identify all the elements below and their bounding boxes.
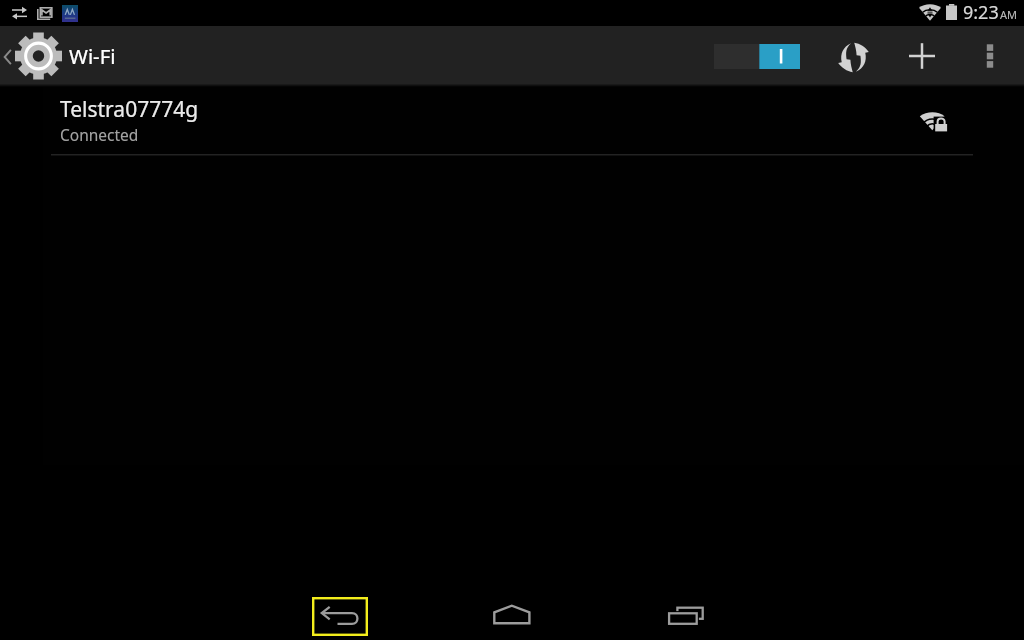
button[interactable]: Back — [292, 584, 388, 640]
staticText: Connected — [60, 124, 139, 145]
button[interactable]: Wi-Fi on — [714, 44, 800, 69]
button[interactable]: Navigate up to Settings — [0, 26, 180, 84]
button[interactable]: Add network — [896, 30, 948, 80]
button[interactable]: Telstra07774g — [0, 85, 1024, 154]
staticText: 9:23 — [963, 0, 999, 25]
staticText: AM — [1000, 7, 1018, 22]
button[interactable]: Home — [464, 584, 560, 640]
button[interactable]: Recent apps — [637, 584, 733, 640]
button[interactable]: Scan — [828, 30, 880, 80]
staticText: Telstra07774g — [60, 95, 199, 124]
staticText: Wi-Fi — [69, 42, 116, 70]
button[interactable]: More options — [966, 30, 1014, 80]
